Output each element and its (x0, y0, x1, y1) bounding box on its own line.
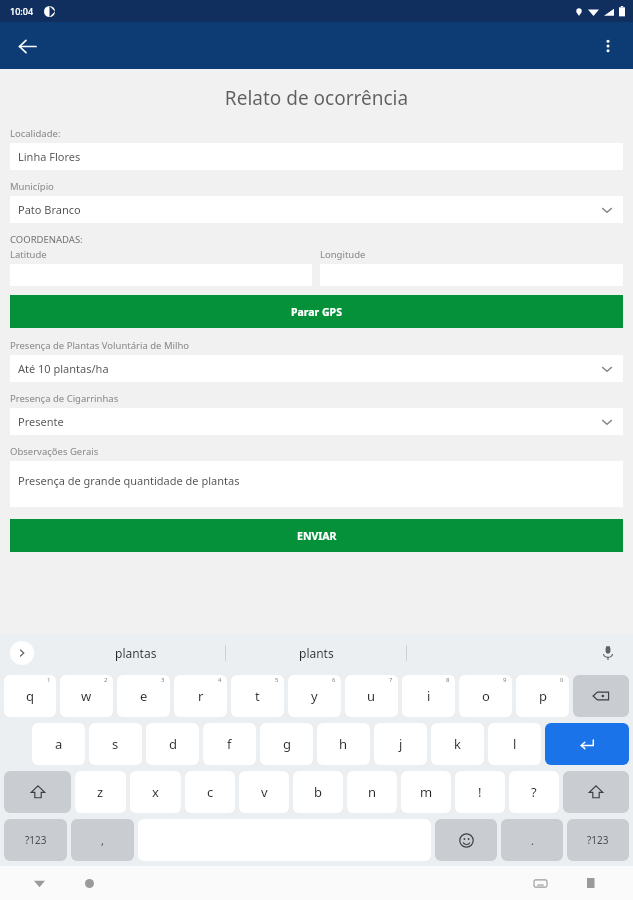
button[interactable]: w (60, 675, 113, 717)
staticText: Até 10 plantas/ha (18, 361, 109, 376)
button[interactable]: n (347, 771, 397, 813)
staticText: g (283, 735, 291, 753)
staticText: Pato Branco (18, 202, 81, 217)
button[interactable]: z (75, 771, 126, 813)
button[interactable]: Expand suggestions (10, 641, 34, 665)
button[interactable]: Até 10 plantas/ha (10, 355, 623, 382)
button[interactable]: Presente (10, 408, 623, 435)
button[interactable]: o (459, 675, 512, 717)
button[interactable]: g (260, 723, 313, 765)
staticText: 0 (560, 676, 564, 684)
button[interactable]: y (288, 675, 341, 717)
button[interactable]: b (293, 771, 343, 813)
staticText: p (539, 687, 547, 705)
staticText: Longitude (320, 248, 366, 261)
button[interactable]: Home (76, 870, 102, 896)
button[interactable]: i (402, 675, 455, 717)
button[interactable]: Recents (579, 870, 605, 896)
button[interactable]: Back (8, 27, 46, 65)
staticText: 9 (503, 676, 507, 684)
staticText: s (112, 735, 119, 753)
button[interactable]: . (501, 819, 563, 861)
staticText: a (55, 735, 63, 753)
staticText: Presença de Plantas Voluntária de Milho (10, 339, 190, 352)
button[interactable]: Enter (545, 723, 629, 765)
staticText: Linha Flores (18, 149, 81, 164)
button[interactable]: r (174, 675, 227, 717)
staticText: c (207, 783, 214, 801)
staticText: plantas (115, 645, 157, 661)
button[interactable]: Emoji (435, 819, 497, 861)
button[interactable]: ENVIAR (10, 519, 623, 552)
staticText: o (482, 687, 490, 705)
button[interactable]: , (71, 819, 134, 861)
staticText: Presença de Cigarrinhas (10, 392, 119, 405)
button[interactable]: Back (26, 870, 52, 896)
button[interactable]: j (374, 723, 427, 765)
button[interactable]: Presença de grande quantidade de plantas (10, 461, 623, 507)
button[interactable]: l (488, 723, 541, 765)
button[interactable]: p (516, 675, 569, 717)
button[interactable]: plants (226, 634, 406, 672)
staticText: b (314, 783, 322, 801)
staticText: v (261, 783, 268, 801)
staticText: x (152, 783, 159, 801)
staticText: u (367, 687, 376, 705)
button[interactable]: s (89, 723, 142, 765)
staticText: t (255, 687, 260, 705)
staticText: Observações Gerais (10, 445, 99, 458)
staticText: COORDENADAS: (10, 233, 83, 246)
staticText: ?123 (25, 833, 47, 847)
button[interactable]: ? (509, 771, 559, 813)
button[interactable]: k (431, 723, 484, 765)
button[interactable]: f (203, 723, 256, 765)
button[interactable]: Backspace (573, 675, 629, 717)
button[interactable]: ?123 (567, 819, 629, 861)
staticText: q (26, 687, 34, 705)
button[interactable]: t (231, 675, 284, 717)
button[interactable]: x (130, 771, 181, 813)
button[interactable]: q (4, 675, 56, 717)
staticText: z (97, 783, 104, 801)
button[interactable]: u (345, 675, 398, 717)
button[interactable]: Shift (4, 771, 71, 813)
button[interactable]: v (239, 771, 289, 813)
button[interactable]: Parar GPS (10, 295, 623, 328)
staticText: r (198, 687, 204, 705)
button[interactable]: ! (455, 771, 505, 813)
button[interactable]: More options (589, 27, 627, 65)
button[interactable]: Voice input (595, 640, 621, 666)
staticText: d (169, 735, 177, 753)
staticText: w (81, 687, 92, 705)
staticText: 5 (275, 676, 279, 684)
button[interactable]: Shift (563, 771, 629, 813)
button[interactable]: Keyboard (527, 870, 553, 896)
staticText: . (531, 833, 534, 848)
button[interactable]: m (401, 771, 451, 813)
button[interactable]: h (317, 723, 370, 765)
button[interactable]: plantas (46, 634, 225, 672)
staticText: ?123 (587, 833, 609, 847)
staticText: e (140, 687, 148, 705)
staticText: Relato de ocorrência (0, 85, 633, 111)
staticText: ! (478, 783, 482, 801)
button[interactable]: c (185, 771, 235, 813)
button[interactable]: d (146, 723, 199, 765)
button[interactable]: e (117, 675, 170, 717)
button[interactable]: ?123 (4, 819, 67, 861)
staticText: 4 (218, 676, 222, 684)
staticText: l (513, 735, 517, 753)
staticText: m (420, 783, 433, 801)
button[interactable]: Pato Branco (10, 196, 623, 223)
staticText: 6 (332, 676, 336, 684)
staticText: 8 (446, 676, 450, 684)
button[interactable]: Linha Flores (10, 143, 623, 170)
staticText: Latitude (10, 248, 47, 261)
staticText: 3 (161, 676, 165, 684)
button[interactable]: a (32, 723, 85, 765)
